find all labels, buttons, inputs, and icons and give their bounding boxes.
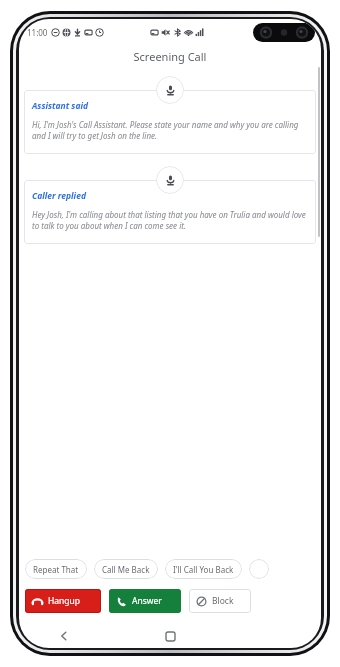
button[interactable]: Back — [49, 624, 79, 648]
button[interactable]: Hangup — [25, 589, 101, 613]
staticText: Hey Josh, I'm calling about that listing… — [32, 209, 308, 232]
staticText: Hangup — [48, 595, 81, 607]
staticText: 11:00 — [27, 27, 48, 38]
staticText: Hi, I'm Josh's Call Assistant. Please st… — [32, 119, 308, 142]
staticText: Caller replied — [32, 190, 86, 202]
button[interactable] — [249, 559, 269, 579]
button[interactable]: I'll Call You Back — [165, 559, 242, 579]
button[interactable]: Call Me Back — [94, 559, 158, 579]
button[interactable]: Voice transcript — [156, 76, 184, 104]
button[interactable]: Assistant said — [24, 90, 316, 154]
staticText: Answer — [132, 595, 162, 607]
staticText: Repeat That — [33, 564, 79, 575]
button[interactable]: Caller replied — [24, 180, 316, 244]
button[interactable]: Voice transcript — [156, 166, 184, 194]
button[interactable]: Repeat That — [25, 559, 87, 579]
button[interactable]: Answer — [109, 589, 181, 613]
staticText: Assistant said — [32, 100, 88, 112]
staticText: Screening Call — [19, 49, 321, 64]
button[interactable]: Home — [155, 624, 185, 648]
staticText: Block — [212, 595, 234, 607]
staticText: Call Me Back — [102, 564, 150, 575]
button[interactable]: Block — [189, 589, 251, 613]
staticText: I'll Call You Back — [173, 564, 234, 575]
